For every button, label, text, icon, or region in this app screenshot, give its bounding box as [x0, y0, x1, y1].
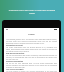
staticText: You may update or delete your account in…	[6, 70, 57, 72]
staticText: We use the information we collect to ope…	[6, 54, 57, 60]
staticText: Sharing of information	[6, 60, 57, 62]
staticText: Information we collect	[6, 44, 57, 46]
staticText: We do not sell your personal data. We ma…	[6, 62, 57, 68]
staticText: Your choices and rights	[6, 68, 57, 70]
staticText: Promote your app with a beautiful landin…	[6, 9, 58, 15]
staticText: How we use information	[6, 52, 57, 54]
staticText: Last updated January 2024. This privacy …	[6, 38, 57, 44]
staticText: We collect information that you provide …	[6, 46, 57, 52]
staticText: Terms	[4, 33, 59, 36]
